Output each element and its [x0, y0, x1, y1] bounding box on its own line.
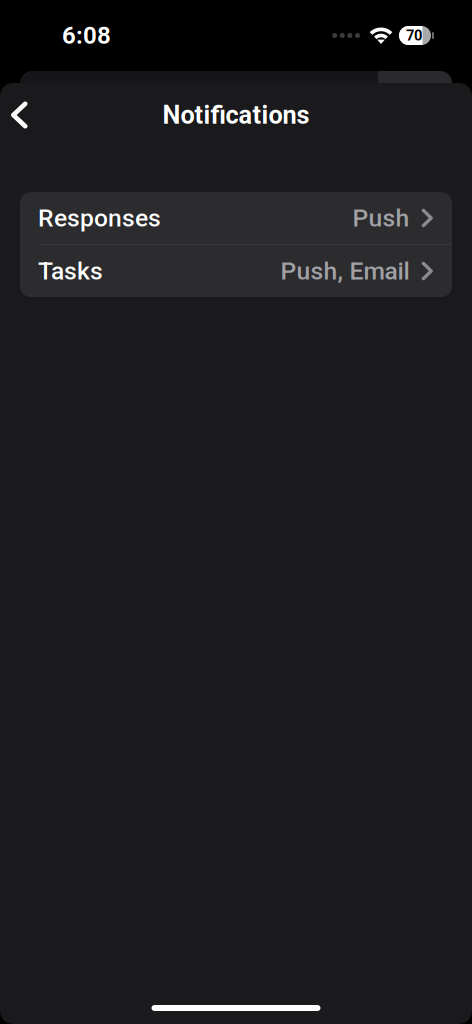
- staticText: 70: [406, 27, 422, 44]
- staticText: Push, Email: [281, 256, 410, 285]
- staticText: 6:08: [62, 21, 111, 49]
- button[interactable]: Responses: [20, 192, 452, 244]
- button[interactable]: Back: [0, 83, 44, 147]
- button[interactable]: Tasks: [20, 245, 452, 297]
- staticText: Push: [353, 203, 410, 232]
- staticText: Notifications: [162, 100, 309, 130]
- staticText: Tasks: [38, 256, 103, 285]
- staticText: Responses: [38, 203, 161, 232]
